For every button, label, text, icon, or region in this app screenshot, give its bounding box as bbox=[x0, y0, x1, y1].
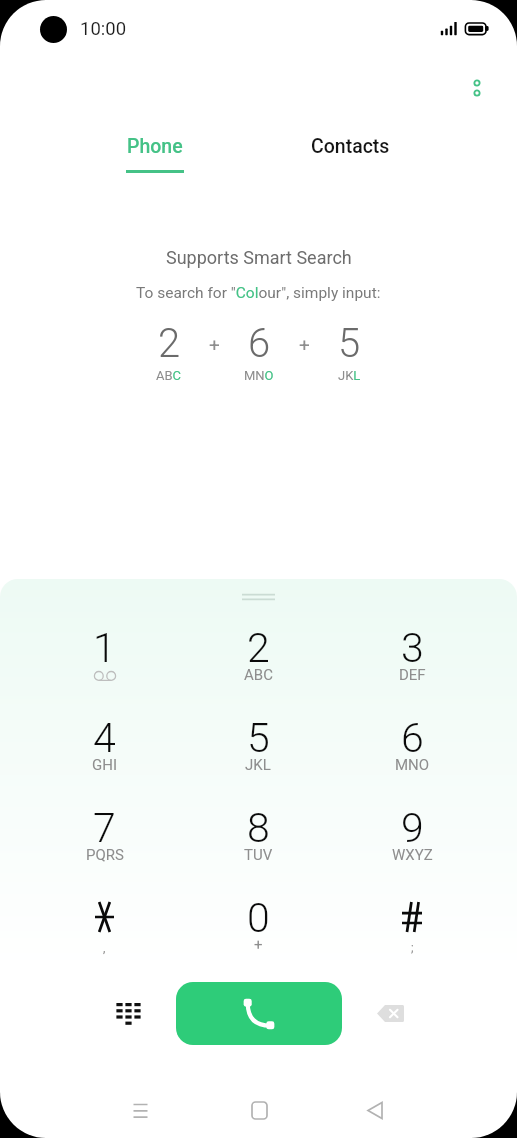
button[interactable]: Phone bbox=[90, 123, 220, 183]
staticText: ABC bbox=[156, 368, 182, 383]
staticText: 5 bbox=[247, 714, 270, 762]
button[interactable]: 2 bbox=[181, 616, 335, 706]
button[interactable]: Back bbox=[353, 1088, 397, 1132]
staticText: MNO bbox=[244, 368, 274, 383]
staticText: 2 bbox=[247, 624, 270, 672]
staticText: 10:00 bbox=[80, 18, 127, 40]
button[interactable]: 0 bbox=[181, 886, 335, 976]
staticText: + bbox=[254, 936, 263, 954]
button[interactable]: Recents bbox=[118, 1088, 162, 1132]
staticText: MNO bbox=[395, 756, 430, 774]
staticText: Contacts bbox=[311, 135, 390, 158]
staticText: 6 bbox=[401, 714, 424, 762]
button[interactable]: 6 bbox=[335, 706, 489, 796]
staticText: 3 bbox=[401, 624, 424, 672]
staticText: , bbox=[103, 941, 106, 955]
button[interactable]: ; bbox=[335, 886, 489, 976]
staticText: 2 bbox=[158, 320, 181, 367]
staticText: JKL bbox=[245, 756, 271, 774]
button[interactable]: 5 bbox=[181, 706, 335, 796]
staticText: Phone bbox=[127, 135, 183, 158]
button[interactable]: 9 bbox=[335, 796, 489, 886]
staticText: Supports Smart Search bbox=[166, 247, 352, 268]
staticText: WXYZ bbox=[392, 846, 433, 864]
staticText: 8 bbox=[247, 804, 270, 852]
staticText: 4 bbox=[93, 714, 116, 762]
button[interactable]: Call bbox=[176, 982, 342, 1045]
staticText: JKL bbox=[338, 368, 361, 383]
staticText: + bbox=[299, 334, 310, 356]
button[interactable]: 1 bbox=[28, 616, 181, 706]
button[interactable]: 3 bbox=[335, 616, 489, 706]
staticText: DEF bbox=[399, 666, 426, 684]
staticText: ; bbox=[411, 941, 414, 955]
button[interactable]: Backspace bbox=[370, 993, 410, 1033]
staticText: 5 bbox=[338, 320, 361, 367]
button[interactable]: More options bbox=[461, 72, 493, 104]
staticText: PQRS bbox=[86, 846, 124, 864]
staticText: 1 bbox=[93, 624, 116, 672]
staticText: + bbox=[209, 334, 220, 356]
button[interactable]: 8 bbox=[181, 796, 335, 886]
button[interactable]: Keypad bbox=[108, 993, 148, 1033]
staticText: ABC bbox=[244, 666, 273, 684]
button[interactable]: 4 bbox=[28, 706, 181, 796]
button[interactable]: Contacts bbox=[285, 123, 415, 183]
staticText: 9 bbox=[401, 804, 424, 852]
staticText: 7 bbox=[93, 804, 116, 852]
button[interactable]: 7 bbox=[28, 796, 181, 886]
button[interactable]: , bbox=[28, 886, 181, 976]
staticText: To search for "Colour", simply input: bbox=[136, 284, 381, 302]
staticText: TUV bbox=[244, 846, 273, 864]
staticText: 6 bbox=[248, 320, 271, 367]
staticText: 0 bbox=[247, 894, 270, 942]
button[interactable]: Home bbox=[237, 1088, 281, 1132]
staticText: GHI bbox=[92, 756, 117, 774]
